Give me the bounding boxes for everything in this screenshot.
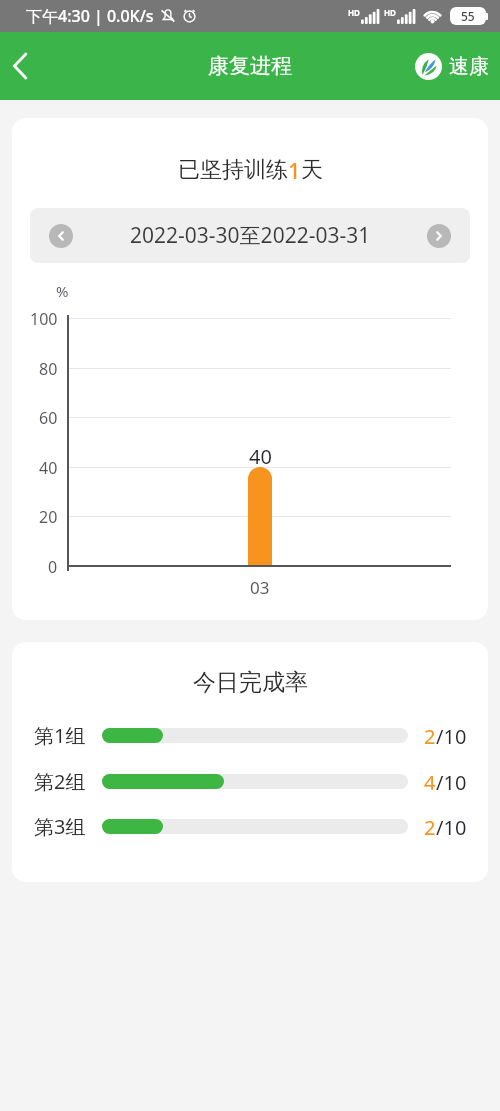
staticText: 2022-03-30至2022-03-31	[130, 221, 371, 250]
staticText: %	[56, 281, 69, 301]
staticText: 55	[461, 8, 475, 24]
staticText: 80	[39, 358, 58, 378]
staticText: 0	[48, 556, 58, 576]
staticText: 03	[250, 576, 270, 599]
button[interactable]	[0, 44, 44, 88]
button[interactable]	[427, 224, 451, 248]
staticText: 下午4:30 | 0.0K/s	[26, 5, 154, 27]
staticText: 第3组	[34, 813, 86, 839]
staticText: 第1组	[34, 722, 86, 748]
staticText: 1	[288, 155, 301, 185]
button[interactable]: 速康	[415, 53, 489, 80]
staticText: 已坚持训练	[178, 156, 288, 184]
staticText: 天	[301, 156, 323, 184]
staticText: 速康	[449, 54, 489, 79]
staticText: 2	[424, 814, 436, 838]
staticText: 40	[39, 457, 58, 477]
staticText: HD	[348, 7, 360, 18]
staticText: /10	[436, 814, 467, 838]
staticText: 40	[249, 443, 272, 470]
staticText: 100	[30, 308, 58, 328]
staticText: 4	[424, 769, 436, 793]
staticText: 60	[39, 407, 58, 427]
staticText: /10	[436, 769, 467, 793]
button[interactable]	[49, 224, 73, 248]
staticText: 康复进程	[208, 53, 292, 79]
staticText: 第2组	[34, 768, 86, 794]
staticText: 今日完成率	[193, 668, 308, 697]
staticText: 2	[424, 723, 436, 747]
staticText: HD	[384, 7, 396, 18]
staticText: 20	[39, 506, 58, 526]
staticText: /10	[436, 723, 467, 747]
